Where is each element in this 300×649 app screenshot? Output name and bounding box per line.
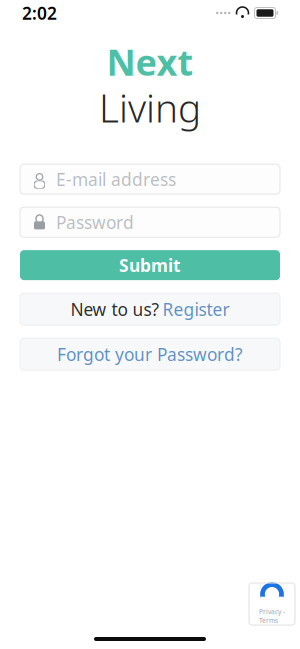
staticText: 2:02 [22,1,57,24]
button[interactable]: Submit [20,250,280,280]
staticText: E-mail address [56,168,176,191]
staticText: Forgot your Password? [57,343,243,366]
button[interactable]: New to us? [20,293,280,325]
button[interactable]: Forgot your Password? [20,338,280,370]
staticText: Password [56,211,134,234]
staticText: Privacy - Terms [259,607,285,625]
staticText: Living [99,82,201,133]
staticText: Next [106,38,193,86]
staticText: Submit [119,254,181,277]
button[interactable]: reCAPTCHA privacy and terms [249,583,295,625]
staticText: New to us? [70,298,159,321]
staticText: Register [162,298,229,321]
